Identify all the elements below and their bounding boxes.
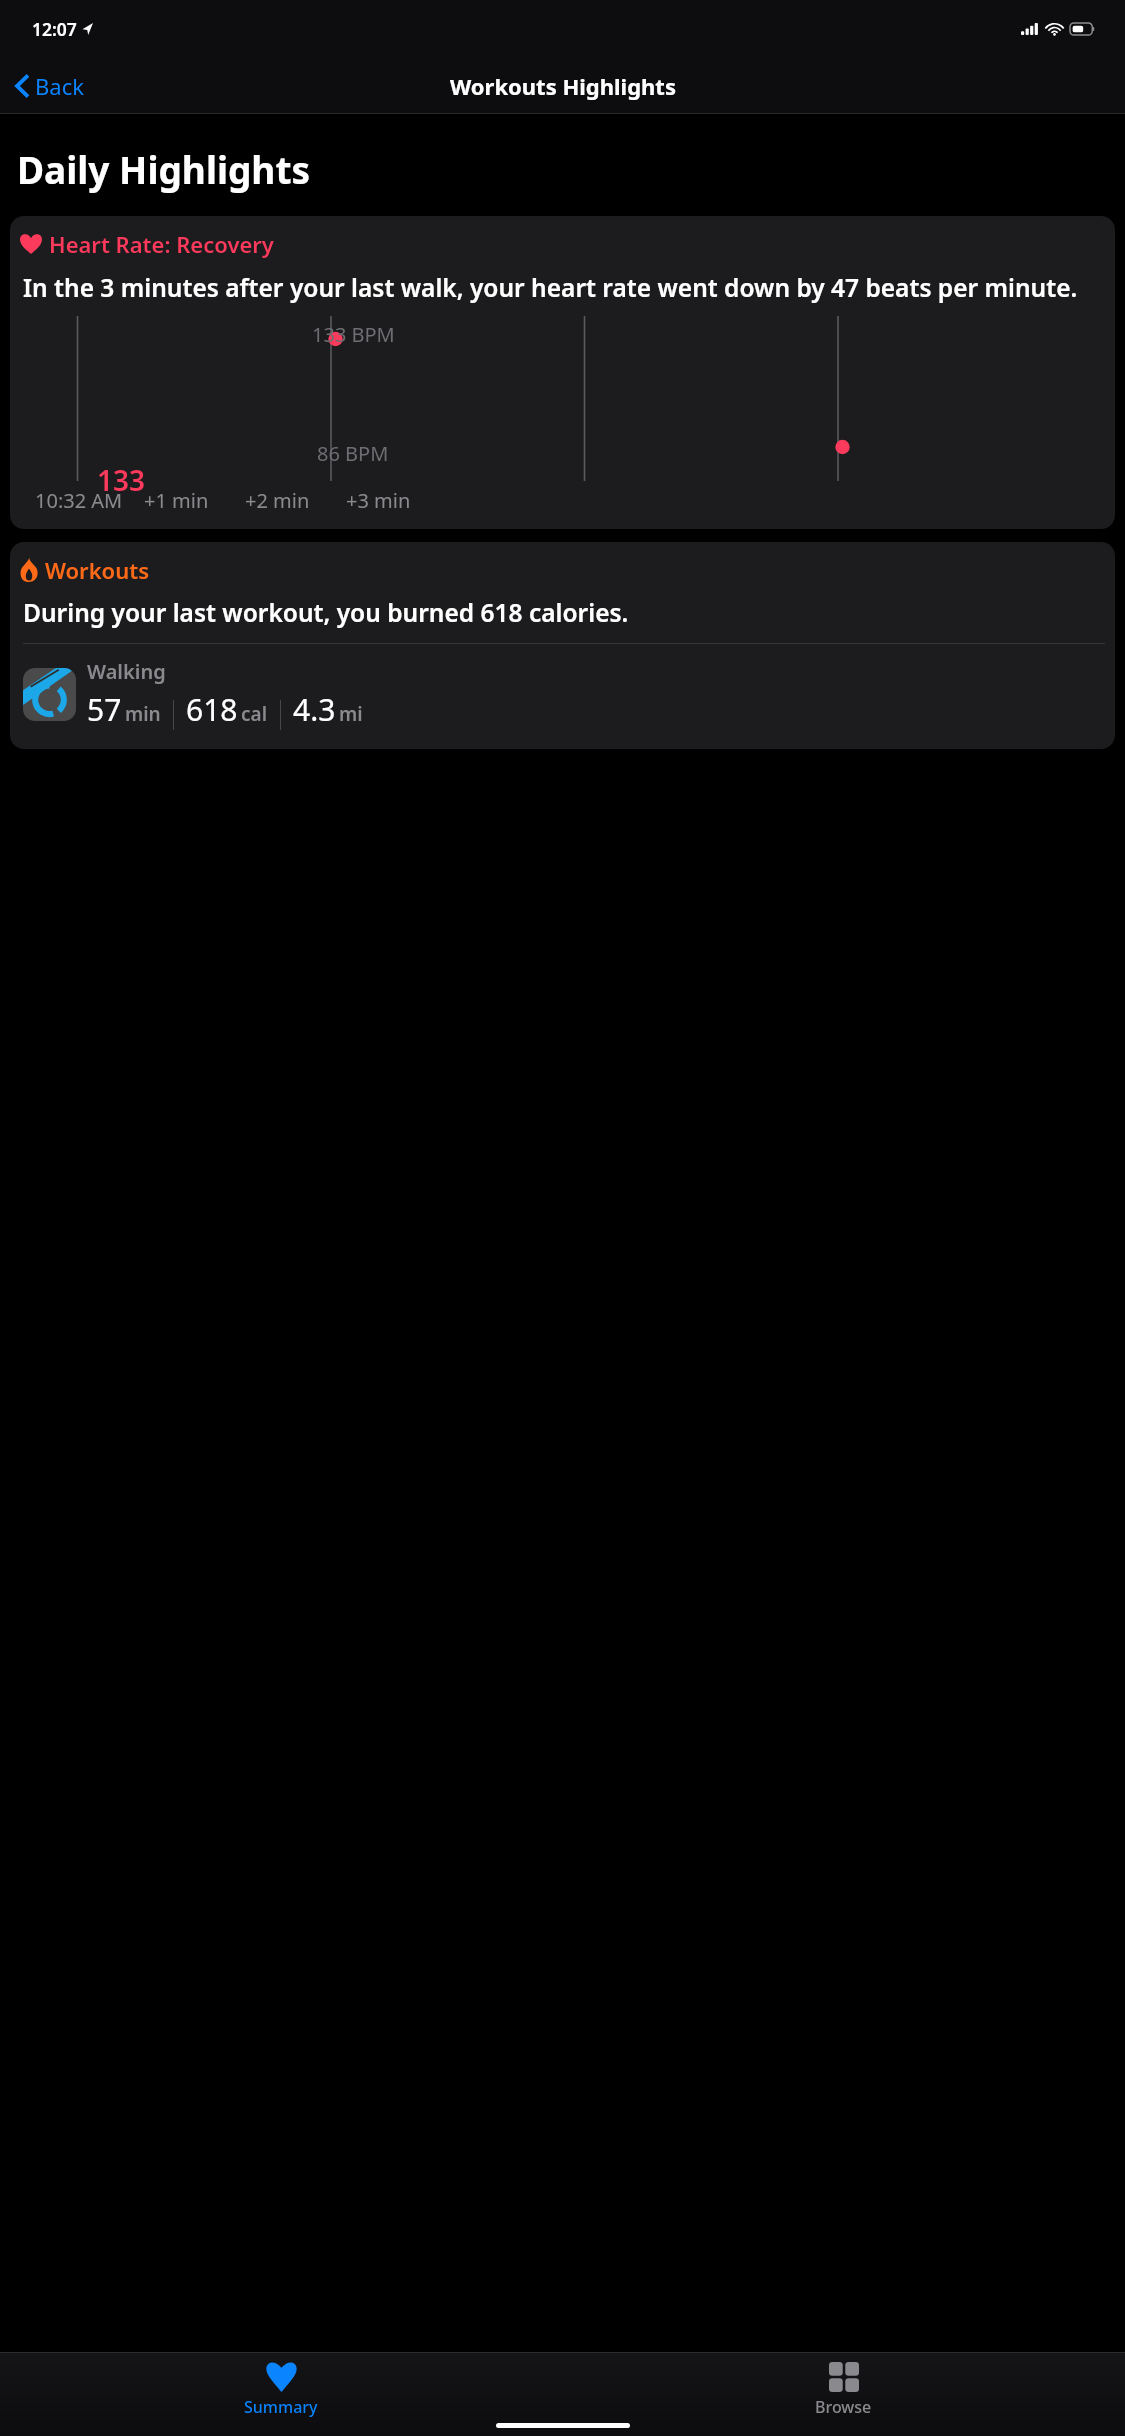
staticText: 57	[87, 689, 122, 730]
staticText: Back	[35, 71, 84, 101]
staticText: 10:32 AM	[35, 487, 123, 514]
staticText: Daily Highlights	[17, 144, 311, 194]
staticText: 4.3	[293, 689, 336, 730]
staticText: 12:07	[32, 17, 77, 41]
staticText: 133 BPM	[312, 321, 395, 348]
staticText: +3 min	[346, 487, 411, 514]
staticText: Browse	[815, 2396, 872, 2418]
staticText: +1 min	[144, 487, 209, 514]
staticText: In the 3 minutes after your last walk, y…	[23, 271, 1078, 304]
staticText: Walking	[87, 658, 166, 685]
staticText: 133	[97, 461, 146, 499]
button[interactable]: Browse	[562, 2352, 1125, 2436]
staticText: 618	[186, 689, 238, 730]
button[interactable]: Back	[10, 67, 90, 105]
button[interactable]: Workouts	[10, 542, 1115, 749]
staticText: During your last workout, you burned 618…	[23, 596, 629, 629]
staticText: Summary	[244, 2396, 318, 2418]
staticText: 86 BPM	[317, 440, 389, 467]
button[interactable]: Summary	[0, 2352, 562, 2436]
staticText: min	[125, 701, 161, 727]
staticText: +2 min	[245, 487, 310, 514]
staticText: Workouts Highlights	[450, 71, 676, 101]
staticText: Workouts	[45, 555, 149, 585]
staticText: cal	[241, 701, 268, 727]
staticText: mi	[339, 701, 363, 727]
button[interactable]: Heart Rate: Recovery	[10, 216, 1115, 529]
staticText: Heart Rate: Recovery	[49, 229, 274, 259]
